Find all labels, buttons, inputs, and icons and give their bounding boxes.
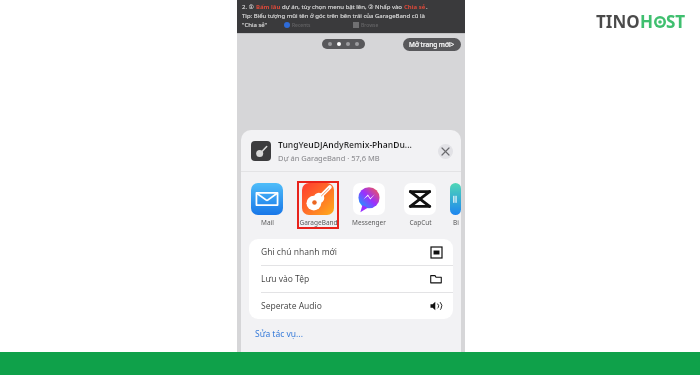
staticText: "Chia sẻ" [242, 21, 268, 29]
staticText: Dự án GarageBand · 57,6 MB [278, 153, 380, 163]
button[interactable]: Bi [450, 181, 461, 229]
staticText: TungYeuDJAndyRemix-PhanDu... [278, 139, 412, 151]
staticText: TINO [596, 10, 640, 33]
staticText: Messenger [352, 218, 386, 227]
staticText: Bi [453, 218, 459, 227]
staticText: Mail [261, 218, 274, 227]
button[interactable] [322, 39, 365, 49]
staticText: dự án, tùy chọn menu bật lên, ② Nhấp vào [282, 3, 404, 11]
staticText: Bấm lâu [256, 3, 282, 11]
button[interactable]: GarageBand [297, 181, 339, 229]
staticText: Seperate Audio [261, 300, 322, 312]
staticText: Sửa tác vụ... [255, 328, 303, 340]
staticText: H [640, 10, 654, 33]
staticText: Browse [361, 22, 379, 29]
staticText: ST [666, 10, 686, 33]
staticText: 2. ① [242, 3, 256, 11]
button[interactable]: Close [438, 144, 453, 159]
button[interactable]: Sửa tác vụ... [241, 319, 461, 352]
staticText: . [426, 3, 428, 11]
button[interactable]: CapCut [399, 181, 441, 229]
staticText: Chia sẻ [404, 3, 426, 11]
staticText: Recents [292, 22, 311, 29]
staticText: Mở trang mới> [409, 40, 455, 49]
button[interactable]: Mail [246, 181, 288, 229]
button[interactable]: Ghi chú nhanh mới [249, 239, 453, 265]
staticText: Ghi chú nhanh mới [261, 246, 338, 258]
staticText: Lưu vào Tệp [261, 273, 310, 285]
button[interactable]: Mở trang mới> [403, 38, 461, 51]
staticText: GarageBand [299, 218, 338, 227]
staticText: Tip: Biểu tượng mũi tên ở góc trên bên t… [242, 12, 425, 20]
button[interactable]: Messenger [348, 181, 390, 229]
button[interactable]: Seperate Audio [249, 293, 453, 319]
staticText: CapCut [409, 218, 432, 227]
button[interactable]: Lưu vào Tệp [249, 266, 453, 292]
